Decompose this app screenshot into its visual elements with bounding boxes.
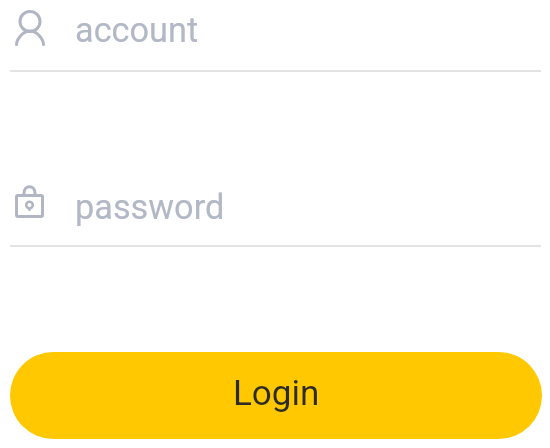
other: Account <box>15 10 45 46</box>
staticText: password <box>75 187 225 227</box>
staticText: Login <box>233 373 320 414</box>
other: Password <box>15 186 44 218</box>
button[interactable]: Password <box>0 175 550 245</box>
button[interactable]: Login <box>10 352 542 439</box>
button[interactable]: Account <box>0 0 550 70</box>
staticText: account <box>75 10 199 50</box>
